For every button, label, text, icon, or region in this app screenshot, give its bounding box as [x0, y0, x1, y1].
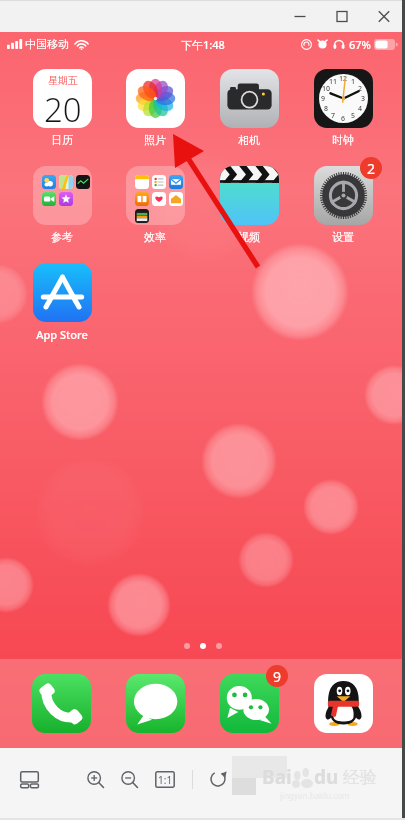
staticText: 9 — [273, 667, 282, 686]
button[interactable]: 星期五 — [19, 69, 105, 147]
staticText: 星期五 — [48, 74, 78, 87]
staticText: 67% — [349, 37, 371, 52]
staticText: 2 — [358, 84, 363, 94]
button[interactable]: QQ — [314, 674, 373, 733]
staticText: Bai — [262, 764, 292, 790]
staticText: 效率 — [144, 230, 166, 244]
button[interactable]: Minimize — [279, 1, 321, 32]
staticText: 8 — [324, 104, 329, 114]
button[interactable]: 微信 — [220, 674, 279, 733]
staticText: 视频 — [238, 230, 260, 244]
button[interactable]: 2 — [300, 166, 386, 244]
button[interactable]: Rotate — [202, 763, 234, 795]
staticText: 中国移动 — [25, 37, 69, 51]
staticText: 时钟 — [332, 133, 354, 147]
staticText: 日历 — [51, 133, 73, 147]
staticText: 2 — [367, 159, 376, 178]
staticText: 7 — [331, 111, 336, 121]
staticText: 设置 — [332, 230, 354, 244]
button[interactable]: Maximize — [321, 1, 363, 32]
staticText: 参考 — [51, 230, 73, 244]
button[interactable]: 1 — [300, 69, 386, 147]
staticText: 经验 — [343, 767, 377, 788]
button[interactable]: App Store — [19, 263, 105, 342]
staticText: du — [314, 764, 339, 790]
staticText: 6 — [341, 114, 346, 124]
button[interactable]: 照片 — [112, 69, 198, 147]
staticText: 1:1 — [158, 773, 173, 787]
staticText: 5 — [351, 111, 356, 121]
staticText: 3 — [361, 94, 366, 104]
staticText: 4 — [358, 104, 363, 114]
button[interactable]: Zoom out — [113, 763, 145, 795]
button[interactable]: 相机 — [206, 69, 292, 147]
staticText: 下午1:48 — [181, 37, 225, 52]
button[interactable]: Close — [363, 1, 405, 32]
staticText: 12 — [339, 74, 348, 84]
button[interactable]: 视频 — [206, 166, 292, 244]
button[interactable]: 效率 — [112, 166, 198, 244]
button[interactable]: 信息 — [126, 674, 185, 733]
staticText: App Store — [36, 327, 88, 342]
staticText: 10 — [322, 84, 331, 94]
staticText: 9 — [321, 94, 326, 104]
button[interactable]: Layout — [13, 763, 45, 795]
staticText: 20 — [44, 87, 82, 128]
staticText: 照片 — [144, 133, 166, 147]
button[interactable]: 电话 — [32, 674, 91, 733]
staticText: 1 — [351, 77, 356, 87]
staticText: 11 — [329, 77, 338, 87]
staticText: 相机 — [238, 133, 260, 147]
staticText: jingyan.baidu.com — [280, 790, 350, 801]
button[interactable]: Zoom in — [79, 763, 111, 795]
button[interactable]: 参考 — [19, 166, 105, 244]
button[interactable]: Actual size — [149, 763, 181, 795]
